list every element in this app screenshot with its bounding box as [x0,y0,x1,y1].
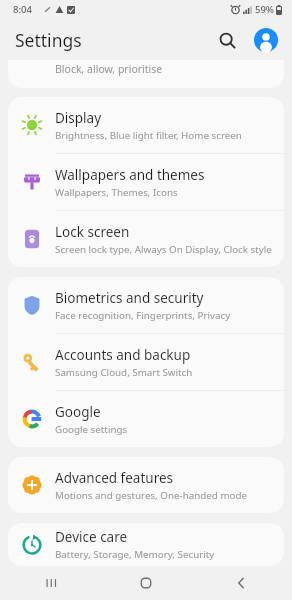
staticText: Settings [15,28,82,52]
staticText: Google settings [55,423,128,436]
button[interactable]: Account [251,25,281,55]
staticText: Wallpapers, Themes, Icons [55,186,178,199]
button[interactable]: Block, allow, prioritise [8,60,284,88]
staticText: Advanced features [55,469,174,487]
staticText: Accounts and backup [55,346,191,364]
button[interactable]: Google [8,391,284,447]
staticText: 59% [255,3,274,16]
staticText: Wallpapers and themes [55,166,205,184]
button[interactable]: Recents [34,566,68,600]
staticText: Face recognition, Fingerprints, Privacy [55,309,231,322]
button[interactable]: Device care [8,523,284,566]
button[interactable]: Advanced features [8,457,284,513]
staticText: Lock screen [55,223,130,241]
staticText: Battery, Storage, Memory, Security [55,548,215,561]
staticText: Screen lock type, Always On Display, Clo… [55,243,272,256]
staticText: 8:04 [13,3,32,16]
button[interactable]: Wallpapers and themes [8,154,284,210]
button[interactable]: Back [224,566,258,600]
staticText: Device care [55,528,128,546]
staticText: Brightness, Blue light filter, Home scre… [55,129,242,142]
staticText: Motions and gestures, One-handed mode [55,489,248,502]
button[interactable]: Biometrics and security [8,277,284,333]
staticText: Display [55,109,102,127]
button[interactable]: Lock screen [8,211,284,267]
staticText: Google [55,403,101,421]
button[interactable]: Display [8,97,284,153]
staticText: Samsung Cloud, Smart Switch [55,366,193,379]
button[interactable]: Accounts and backup [8,334,284,390]
button[interactable]: Search [212,25,242,55]
staticText: Biometrics and security [55,289,204,307]
staticText: Block, allow, prioritise [55,62,163,76]
button[interactable]: Home [129,566,163,600]
